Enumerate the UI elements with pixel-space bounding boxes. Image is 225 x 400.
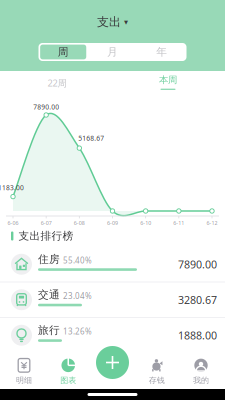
staticText: 5168.67 (78, 134, 104, 143)
button[interactable]: 住房 (0, 247, 225, 282)
staticText: 7890.00 (178, 257, 217, 271)
staticText: 6-10 (140, 219, 151, 227)
staticText: 明细 (16, 375, 32, 385)
staticText: 13.26% (63, 326, 92, 337)
staticText: 6-11 (173, 219, 184, 227)
staticText: 周 (58, 45, 69, 58)
staticText: ▾ (124, 17, 128, 27)
staticText: 6-12 (206, 219, 217, 227)
staticText: 6-07 (41, 219, 52, 227)
staticText: 本周 (159, 74, 177, 86)
staticText: 55.40% (63, 255, 92, 266)
staticText: 图表 (60, 375, 76, 385)
staticText: 我的 (193, 375, 209, 385)
button[interactable]: 旅行 (0, 318, 225, 353)
staticText: 1183.00 (0, 183, 24, 192)
staticText: 月 (107, 45, 118, 58)
staticText: 住房 (38, 253, 60, 266)
staticText: 支出 (97, 15, 121, 29)
staticText: 1888.00 (178, 328, 217, 342)
button[interactable]: 22周 (40, 71, 74, 95)
staticText: 年 (156, 45, 167, 58)
button[interactable]: 图表 (46, 354, 90, 389)
button[interactable]: 存钱 (135, 354, 179, 389)
staticText: 6-08 (74, 219, 85, 227)
button[interactable]: 明细 (2, 354, 46, 389)
staticText: 支出排行榜 (18, 229, 73, 242)
staticText: 7890.00 (33, 103, 59, 111)
staticText: 6-09 (107, 219, 118, 227)
staticText: 22周 (47, 77, 66, 89)
button[interactable]: 月 (88, 43, 137, 61)
staticText: 存钱 (149, 375, 165, 385)
button[interactable]: 周 (39, 43, 88, 61)
button[interactable]: Add expense (96, 346, 129, 379)
button[interactable]: 支出 (97, 14, 128, 30)
button[interactable]: 我的 (179, 354, 223, 389)
staticText: 6-06 (7, 219, 18, 227)
button[interactable]: 本周 (151, 70, 185, 94)
staticText: 交通 (38, 288, 60, 301)
staticText: 3280.67 (178, 293, 217, 307)
button[interactable]: 交通 (0, 282, 225, 318)
staticText: 23.04% (63, 291, 92, 301)
staticText: 旅行 (38, 324, 60, 337)
button[interactable]: 年 (137, 43, 186, 61)
